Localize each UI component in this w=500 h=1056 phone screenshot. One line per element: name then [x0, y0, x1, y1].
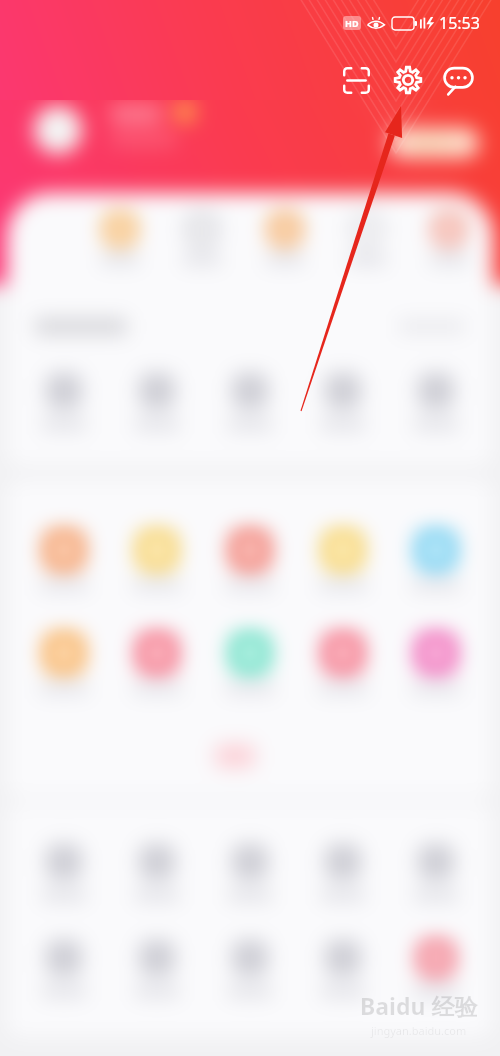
- staticText: jingyan.baidu.com: [371, 1023, 467, 1038]
- staticText: Baidu 经验: [360, 990, 478, 1021]
- button[interactable]: 会员中心: [388, 128, 479, 158]
- button[interactable]: [24, 371, 104, 432]
- button[interactable]: [396, 371, 476, 432]
- button[interactable]: Profile: [34, 106, 82, 154]
- button[interactable]: [210, 938, 290, 999]
- button[interactable]: [303, 528, 383, 593]
- button[interactable]: [210, 528, 290, 593]
- button[interactable]: [24, 842, 104, 903]
- button[interactable]: [210, 842, 290, 903]
- staticText: HD: [345, 17, 359, 29]
- button[interactable]: [117, 938, 197, 999]
- button[interactable]: [210, 631, 290, 696]
- staticText: 15:53: [439, 12, 480, 34]
- button[interactable]: [347, 213, 387, 265]
- button[interactable]: [429, 213, 469, 265]
- button[interactable]: [117, 631, 197, 696]
- button[interactable]: [303, 842, 383, 903]
- button[interactable]: [396, 938, 476, 999]
- button[interactable]: [117, 528, 197, 593]
- button[interactable]: [117, 842, 197, 903]
- button[interactable]: [265, 213, 305, 265]
- button[interactable]: Settings: [388, 60, 428, 100]
- button[interactable]: [24, 528, 104, 593]
- button[interactable]: Scan: [336, 60, 376, 100]
- button[interactable]: [117, 371, 197, 432]
- button[interactable]: [182, 213, 222, 265]
- button[interactable]: [24, 631, 104, 696]
- button[interactable]: [210, 371, 290, 432]
- button[interactable]: [396, 631, 476, 696]
- button[interactable]: [303, 938, 383, 999]
- button[interactable]: [396, 528, 476, 593]
- button[interactable]: [303, 631, 383, 696]
- button[interactable]: [24, 938, 104, 999]
- button[interactable]: [396, 842, 476, 903]
- staticText: 会员中心: [408, 135, 460, 151]
- button[interactable]: [100, 213, 140, 265]
- button[interactable]: [303, 371, 383, 432]
- button[interactable]: Messages: [438, 60, 478, 100]
